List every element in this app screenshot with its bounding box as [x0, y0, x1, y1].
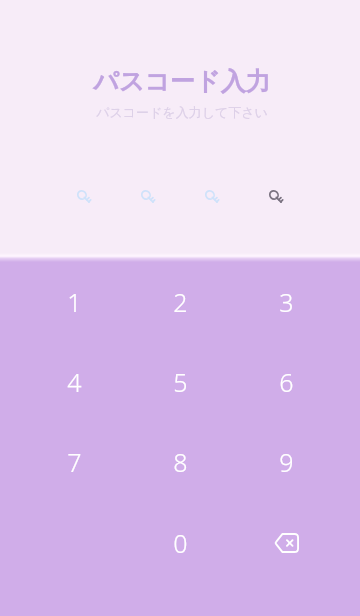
button[interactable]: 1: [28, 269, 120, 335]
staticText: 0: [173, 526, 188, 560]
staticText: パスコードを入力して下さい: [96, 104, 268, 120]
staticText: 6: [279, 365, 294, 399]
other: Passcode digit 2: [116, 182, 180, 212]
staticText: 8: [173, 445, 188, 479]
button[interactable]: 0: [134, 510, 226, 576]
button[interactable]: 9: [240, 429, 332, 495]
button[interactable]: 7: [28, 429, 120, 495]
staticText: 2: [173, 285, 188, 319]
button[interactable]: Delete: [240, 510, 332, 576]
staticText: 1: [67, 285, 82, 319]
button[interactable]: 2: [134, 269, 226, 335]
button[interactable]: 8: [134, 429, 226, 495]
staticText: 7: [67, 445, 82, 479]
button[interactable]: 5: [134, 349, 226, 415]
staticText: 3: [279, 285, 294, 319]
staticText: 9: [279, 445, 294, 479]
other: Passcode digit 4: [244, 182, 308, 212]
button[interactable]: 4: [28, 349, 120, 415]
staticText: 5: [173, 365, 188, 399]
staticText: パスコード入力: [93, 66, 271, 97]
button[interactable]: 3: [240, 269, 332, 335]
other: Passcode digit 1: [52, 182, 116, 212]
other: Passcode digit 3: [180, 182, 244, 212]
staticText: 4: [67, 365, 82, 399]
button[interactable]: 6: [240, 349, 332, 415]
